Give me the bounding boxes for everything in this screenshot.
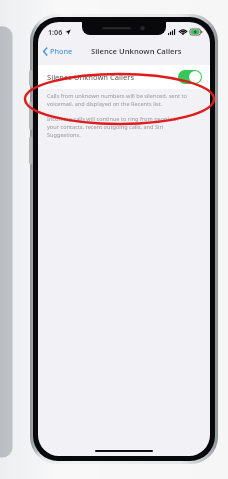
button[interactable]: Silence Unknown Callers	[38, 65, 210, 89]
button[interactable]: Silence Unknown Callers toggle, on	[178, 70, 202, 84]
staticText: Phone	[50, 46, 73, 56]
staticText: Incoming calls will continue to ring fro…	[47, 115, 179, 139]
button[interactable]: Phone	[38, 44, 77, 58]
staticText: 1:06	[48, 27, 63, 37]
staticText: Calls from unknown numbers will be silen…	[47, 92, 187, 108]
staticText: Silence Unknown Callers	[47, 72, 135, 82]
staticText: Silence Unknown Callers	[91, 46, 182, 56]
